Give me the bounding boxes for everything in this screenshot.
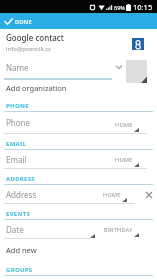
- staticText: Name: [6, 62, 29, 73]
- staticText: Add organization: [6, 83, 67, 93]
- button[interactable]: Add new: [0, 239, 157, 260]
- staticText: Google contact: [6, 32, 64, 43]
- staticText: Add new: [6, 245, 37, 255]
- staticText: HOME: [115, 156, 133, 163]
- staticText: Email: [6, 154, 27, 165]
- staticText: BIRTHDAY: [104, 226, 133, 233]
- button[interactable]: Delete: [144, 190, 154, 200]
- button[interactable]: Email: [0, 150, 143, 168]
- button[interactable]: Google contact: [0, 29, 157, 55]
- button[interactable]: Add photo: [126, 60, 147, 83]
- button[interactable]: DONE: [0, 13, 38, 29]
- staticText: Phone: [6, 117, 31, 128]
- staticText: ADDRESS: [6, 175, 35, 183]
- staticText: DONE: [15, 18, 32, 25]
- staticText: 10:15: [133, 2, 153, 12]
- button[interactable]: Address: [0, 185, 143, 203]
- staticText: 69%: [114, 4, 125, 11]
- button[interactable]: Add organization: [0, 80, 157, 96]
- staticText: HOME: [115, 121, 133, 128]
- staticText: HOME: [103, 191, 121, 198]
- staticText: PHONE: [6, 102, 29, 110]
- staticText: EVENTS: [6, 210, 31, 218]
- staticText: GROUPS: [6, 266, 33, 274]
- button[interactable]: Expand name: [112, 55, 126, 79]
- staticText: info@psencik.cz: [6, 45, 51, 53]
- staticText: EMAIL: [6, 140, 27, 148]
- button[interactable]: Date: [0, 220, 143, 238]
- button[interactable]: Name: [0, 55, 112, 79]
- staticText: Address: [6, 189, 37, 200]
- button[interactable]: Phone: [0, 112, 143, 133]
- staticText: Date: [6, 224, 24, 235]
